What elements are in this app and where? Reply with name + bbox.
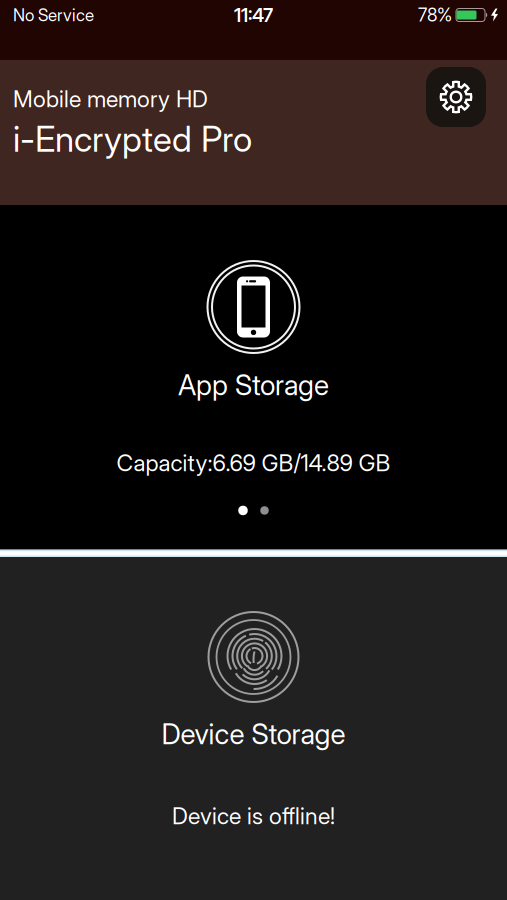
staticText: Capacity:6.69 GB/14.89 GB (116, 449, 390, 477)
staticText: i-Encrypted Pro (13, 118, 252, 160)
staticText: Device is offline! (172, 802, 335, 830)
button[interactable]: Settings (426, 67, 486, 127)
staticText: No Service (13, 5, 94, 25)
staticText: App Storage (178, 368, 329, 402)
staticText: Device Storage (161, 717, 345, 751)
staticText: Mobile memory HD (13, 85, 208, 113)
staticText: 11:47 (234, 3, 273, 26)
staticText: 78% (418, 4, 452, 26)
